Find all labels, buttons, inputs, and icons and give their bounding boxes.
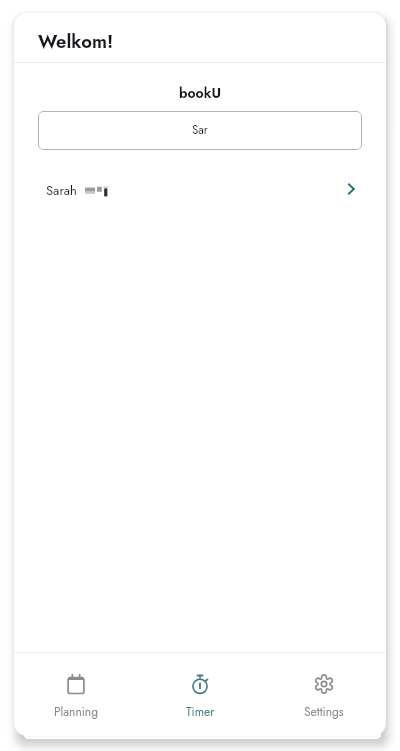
- button[interactable]: Settings: [262, 653, 386, 736]
- staticText: Timer: [186, 703, 215, 720]
- staticText: bookU: [14, 83, 386, 103]
- staticText: Welkom!: [38, 28, 114, 55]
- button[interactable]: Timer: [138, 653, 262, 736]
- button[interactable]: Sar: [38, 111, 362, 150]
- other: Open Sarah: [342, 180, 360, 198]
- staticText: Sar: [192, 122, 208, 139]
- staticText: Settings: [304, 703, 344, 720]
- staticText: Sarah: [46, 181, 77, 200]
- button[interactable]: Sarah: [14, 169, 386, 211]
- staticText: Planning: [54, 703, 98, 720]
- button[interactable]: Planning: [14, 653, 138, 736]
